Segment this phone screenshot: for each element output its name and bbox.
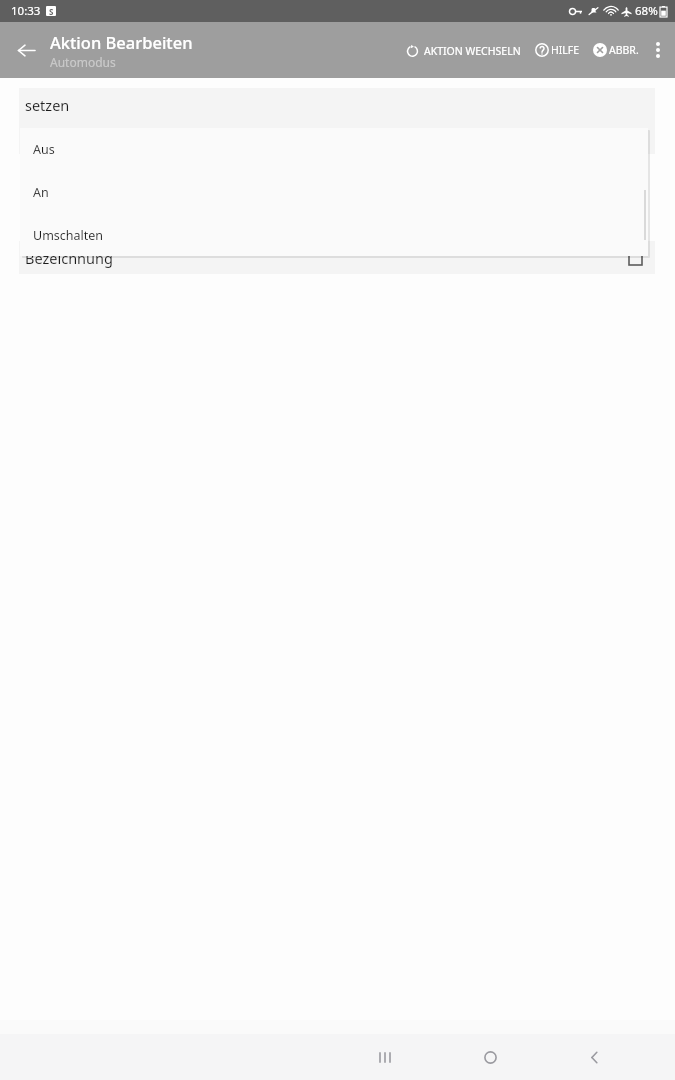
button[interactable]: Weitere Optionen <box>643 30 673 70</box>
staticText: AKTION WECHSELN <box>424 44 521 58</box>
button[interactable]: ABBR. <box>589 35 643 65</box>
staticText: Automodus <box>50 54 116 70</box>
staticText: Bezeichnung <box>25 248 113 268</box>
button[interactable]: HILFE <box>531 35 584 65</box>
staticText: ABBR. <box>609 43 639 57</box>
button[interactable]: Bezeichnung Kontrollkästchen <box>625 248 645 268</box>
button[interactable]: Startbildschirm <box>467 1034 513 1080</box>
button[interactable]: Zurück <box>6 30 46 70</box>
staticText: S <box>49 6 54 16</box>
button[interactable]: Umschalten <box>20 214 648 256</box>
staticText: Aus <box>33 141 55 158</box>
button[interactable]: Bezeichnung <box>19 241 655 274</box>
button[interactable]: Aus <box>20 128 648 171</box>
staticText: 10:33 <box>11 3 41 19</box>
button[interactable]: An <box>20 171 648 214</box>
staticText: 68% <box>635 3 658 19</box>
button[interactable]: Letzte Apps <box>362 1034 408 1080</box>
staticText: Umschalten <box>33 227 104 244</box>
staticText: Aktion Bearbeiten <box>50 31 193 53</box>
button[interactable]: setzen <box>19 88 655 121</box>
staticText: setzen <box>25 95 70 115</box>
button[interactable]: AKTION WECHSELN <box>400 35 526 66</box>
button[interactable]: Zurück <box>571 1034 617 1080</box>
staticText: HILFE <box>551 43 580 57</box>
button[interactable] <box>19 121 655 154</box>
staticText: An <box>33 184 49 201</box>
